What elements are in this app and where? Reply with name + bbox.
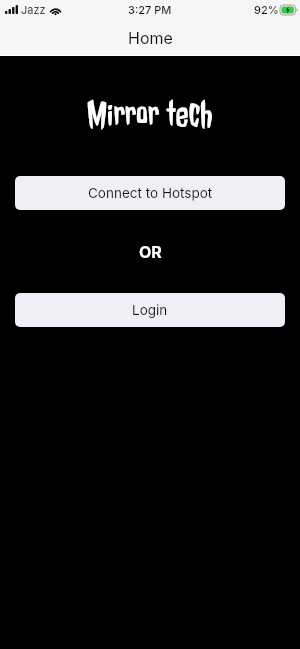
- staticText: Connect to Hotspot: [88, 185, 213, 201]
- button[interactable]: Connect to Hotspot: [15, 176, 285, 210]
- other: Wi-Fi connected: [49, 5, 62, 15]
- staticText: Login: [132, 302, 168, 318]
- staticText: Home: [128, 28, 173, 47]
- staticText: 3:27 PM: [128, 3, 172, 16]
- other: Battery 92 percent, charging: [280, 5, 297, 15]
- other: Cellular signal strength: [5, 5, 18, 14]
- button[interactable]: Login: [15, 293, 285, 327]
- staticText: Mirror tech: [87, 91, 213, 137]
- staticText: 92%: [254, 3, 279, 16]
- staticText: Jazz: [21, 3, 46, 16]
- staticText: OR: [139, 242, 162, 261]
